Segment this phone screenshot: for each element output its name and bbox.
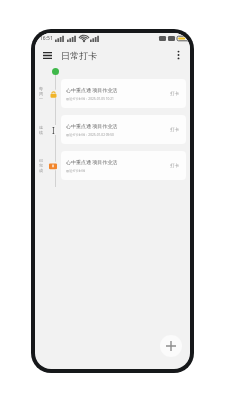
button[interactable]: More options bbox=[170, 47, 186, 63]
button[interactable]: Add new check-in bbox=[160, 335, 182, 357]
button[interactable]: 心中重点通 项目作业活 bbox=[61, 115, 186, 144]
staticText: 完 bbox=[39, 163, 43, 168]
staticText: 成 bbox=[39, 168, 43, 173]
staticText: 16:51 bbox=[40, 35, 53, 42]
button[interactable]: 心中重点通 项目作业活 bbox=[61, 79, 186, 108]
staticText: 打卡 bbox=[170, 91, 179, 97]
staticText: 打卡 bbox=[170, 127, 179, 133]
staticText: 续 bbox=[39, 130, 43, 135]
staticText: 心中重点通 项目作业活 bbox=[66, 123, 118, 130]
staticText: 心中重点通 项目作业活 bbox=[66, 87, 118, 94]
staticText: 已 bbox=[39, 158, 43, 163]
staticText: 连 bbox=[39, 125, 43, 130]
button[interactable]: Open navigation menu bbox=[39, 47, 55, 63]
staticText: 最近打卡时间：2025-01-02 09:50 bbox=[66, 133, 114, 137]
staticText: 最近打卡时间 bbox=[66, 169, 86, 173]
staticText: 周 bbox=[39, 91, 43, 96]
staticText: 打卡 bbox=[170, 163, 179, 169]
staticText: 最近打卡时间：2025-01-05 10:21 bbox=[66, 97, 114, 101]
button[interactable]: 心中重点通 项目作业活 bbox=[61, 151, 186, 180]
staticText: 心中重点通 项目作业活 bbox=[66, 159, 118, 166]
staticText: I bbox=[52, 125, 55, 135]
staticText: 日常打卡 bbox=[61, 50, 97, 61]
staticText: 每 bbox=[39, 86, 43, 91]
staticText: 一 bbox=[39, 96, 43, 101]
